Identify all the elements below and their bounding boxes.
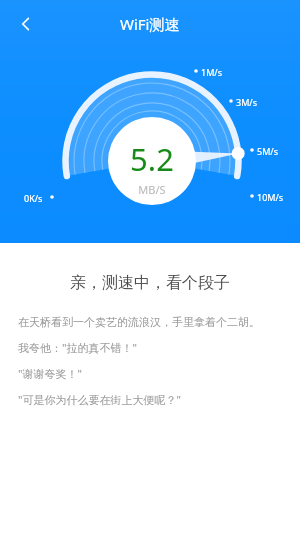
staticText: 5M/s xyxy=(257,145,278,157)
staticText: "可是你为什么要在街上大便呢？" xyxy=(18,392,181,407)
button[interactable]: Back xyxy=(4,2,48,46)
staticText: WiFi测速 xyxy=(120,14,180,34)
staticText: 1M/s xyxy=(201,66,222,78)
staticText: 5.2 xyxy=(130,138,174,180)
staticText: 0K/s xyxy=(24,192,43,204)
staticText: 我夸他："拉的真不错！" xyxy=(18,340,137,355)
staticText: "谢谢夸奖！" xyxy=(18,366,82,381)
staticText: 亲，测速中，看个段子 xyxy=(0,273,300,293)
staticText: 在天桥看到一个卖艺的流浪汉，手里拿着个二胡。 xyxy=(18,315,260,329)
staticText: 3M/s xyxy=(236,96,257,108)
staticText: 10M/s xyxy=(257,191,284,203)
staticText: MB/S xyxy=(138,182,166,197)
